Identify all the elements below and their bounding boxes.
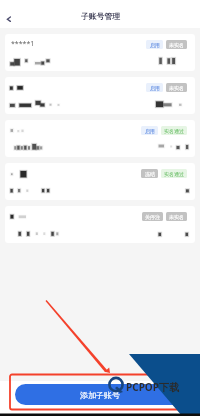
button[interactable]: 关停注: [142, 212, 163, 221]
staticText: *****1: [11, 39, 35, 49]
staticText: 启用: [150, 42, 160, 48]
staticText: 实名通过: [164, 171, 184, 177]
button[interactable]: 未实名: [166, 83, 187, 92]
staticText: PCPOP下载: [126, 380, 179, 394]
staticText: 实名通过: [164, 128, 184, 134]
button[interactable]: 未实名: [166, 40, 187, 49]
staticText: 未实名: [169, 42, 184, 48]
button[interactable]: 未实名: [166, 212, 187, 221]
button[interactable]: 启用: [5, 34, 195, 71]
staticText: 启用: [150, 85, 160, 91]
button[interactable]: 冻结: [5, 163, 195, 200]
button[interactable]: 启用: [5, 77, 195, 114]
staticText: 启用: [145, 128, 155, 134]
staticText: 未实名: [169, 85, 184, 91]
staticText: 关停注: [145, 214, 160, 220]
button[interactable]: 启用: [141, 126, 158, 135]
button[interactable]: 启用: [146, 83, 163, 92]
button[interactable]: 实名通过: [161, 126, 187, 135]
button[interactable]: 启用: [146, 40, 163, 49]
staticText: 添加子账号: [80, 390, 120, 400]
button[interactable]: Back: [2, 12, 15, 25]
button[interactable]: 关停注: [5, 206, 195, 243]
staticText: 未实名: [169, 214, 184, 220]
button[interactable]: 实名通过: [161, 169, 187, 178]
staticText: 子账号管理: [81, 11, 120, 21]
button[interactable]: 添加子账号: [15, 384, 185, 405]
button[interactable]: 启用: [5, 120, 195, 157]
button[interactable]: 冻结: [141, 169, 158, 178]
staticText: 冻结: [145, 171, 155, 177]
